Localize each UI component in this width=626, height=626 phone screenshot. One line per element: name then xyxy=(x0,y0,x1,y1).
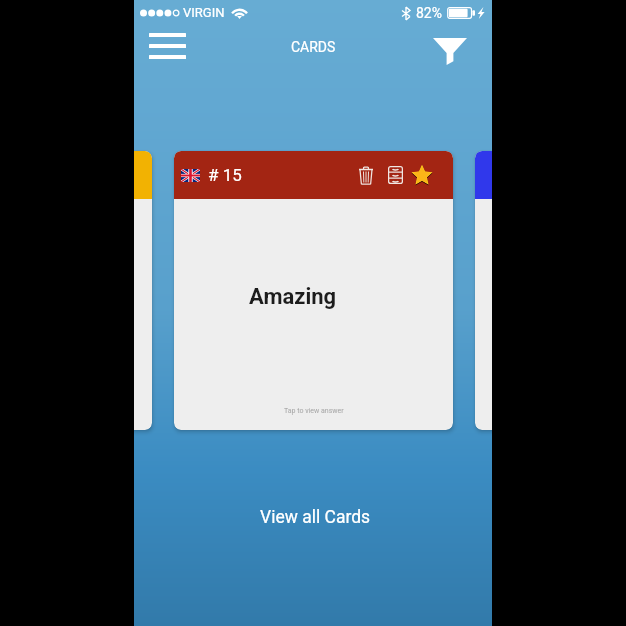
staticText: View all Cards xyxy=(260,507,371,528)
staticText: # 15 xyxy=(208,165,242,185)
button[interactable]: Favorite xyxy=(410,163,434,187)
staticText: VIRGIN xyxy=(183,5,225,20)
button[interactable]: Filter xyxy=(421,29,478,73)
staticText: CARDS xyxy=(291,39,336,55)
staticText: 82% xyxy=(416,5,442,21)
staticText: Tap to view answer xyxy=(284,407,344,415)
button[interactable] xyxy=(134,151,152,430)
button[interactable]: View all Cards xyxy=(136,498,492,536)
button[interactable]: Menu xyxy=(139,24,196,68)
button[interactable]: Delete xyxy=(354,163,378,187)
staticText: Amazing xyxy=(249,284,337,310)
button[interactable]: # 15 xyxy=(174,151,453,430)
button[interactable]: Archive xyxy=(383,163,407,187)
button[interactable] xyxy=(475,151,492,430)
